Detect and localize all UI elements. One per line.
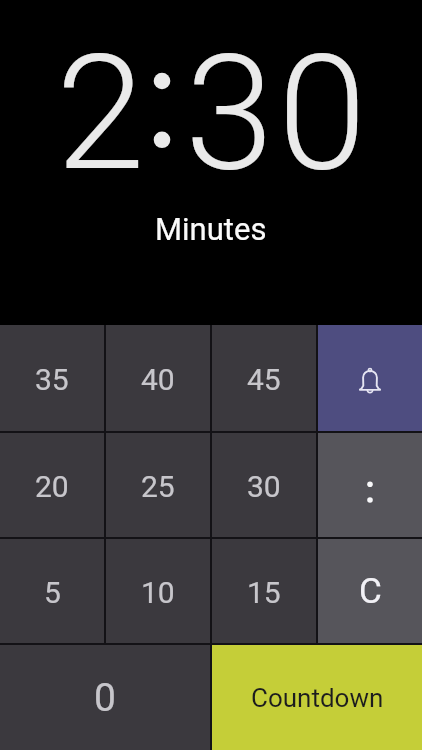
staticText: 5: [44, 575, 61, 610]
staticText: 35: [35, 362, 69, 397]
staticText: 10: [141, 575, 175, 610]
button[interactable]: 10: [106, 539, 210, 643]
staticText: 20: [35, 469, 69, 504]
staticText: 25: [141, 469, 175, 504]
button[interactable]: 45: [212, 325, 316, 431]
button[interactable]: [318, 325, 422, 431]
button[interactable]: C: [318, 539, 422, 643]
button[interactable]: 20: [0, 433, 104, 537]
button[interactable]: [318, 433, 422, 537]
staticText: C: [359, 571, 382, 612]
button[interactable]: 15: [212, 539, 316, 643]
button[interactable]: 25: [106, 433, 210, 537]
staticText: Minutes: [155, 211, 267, 247]
staticText: 0: [94, 675, 116, 721]
staticText: 2: [56, 20, 145, 208]
staticText: Countdown: [251, 683, 384, 713]
staticText: 30: [185, 20, 371, 208]
button[interactable]: 35: [0, 325, 104, 431]
button[interactable]: Countdown: [212, 645, 422, 750]
staticText: 15: [247, 575, 281, 610]
button[interactable]: 40: [106, 325, 210, 431]
staticText: 40: [141, 362, 175, 397]
staticText: 45: [247, 362, 281, 397]
button[interactable]: 30: [212, 433, 316, 537]
staticText: 30: [247, 469, 281, 504]
button[interactable]: 5: [0, 539, 104, 643]
button[interactable]: 0: [0, 645, 210, 750]
